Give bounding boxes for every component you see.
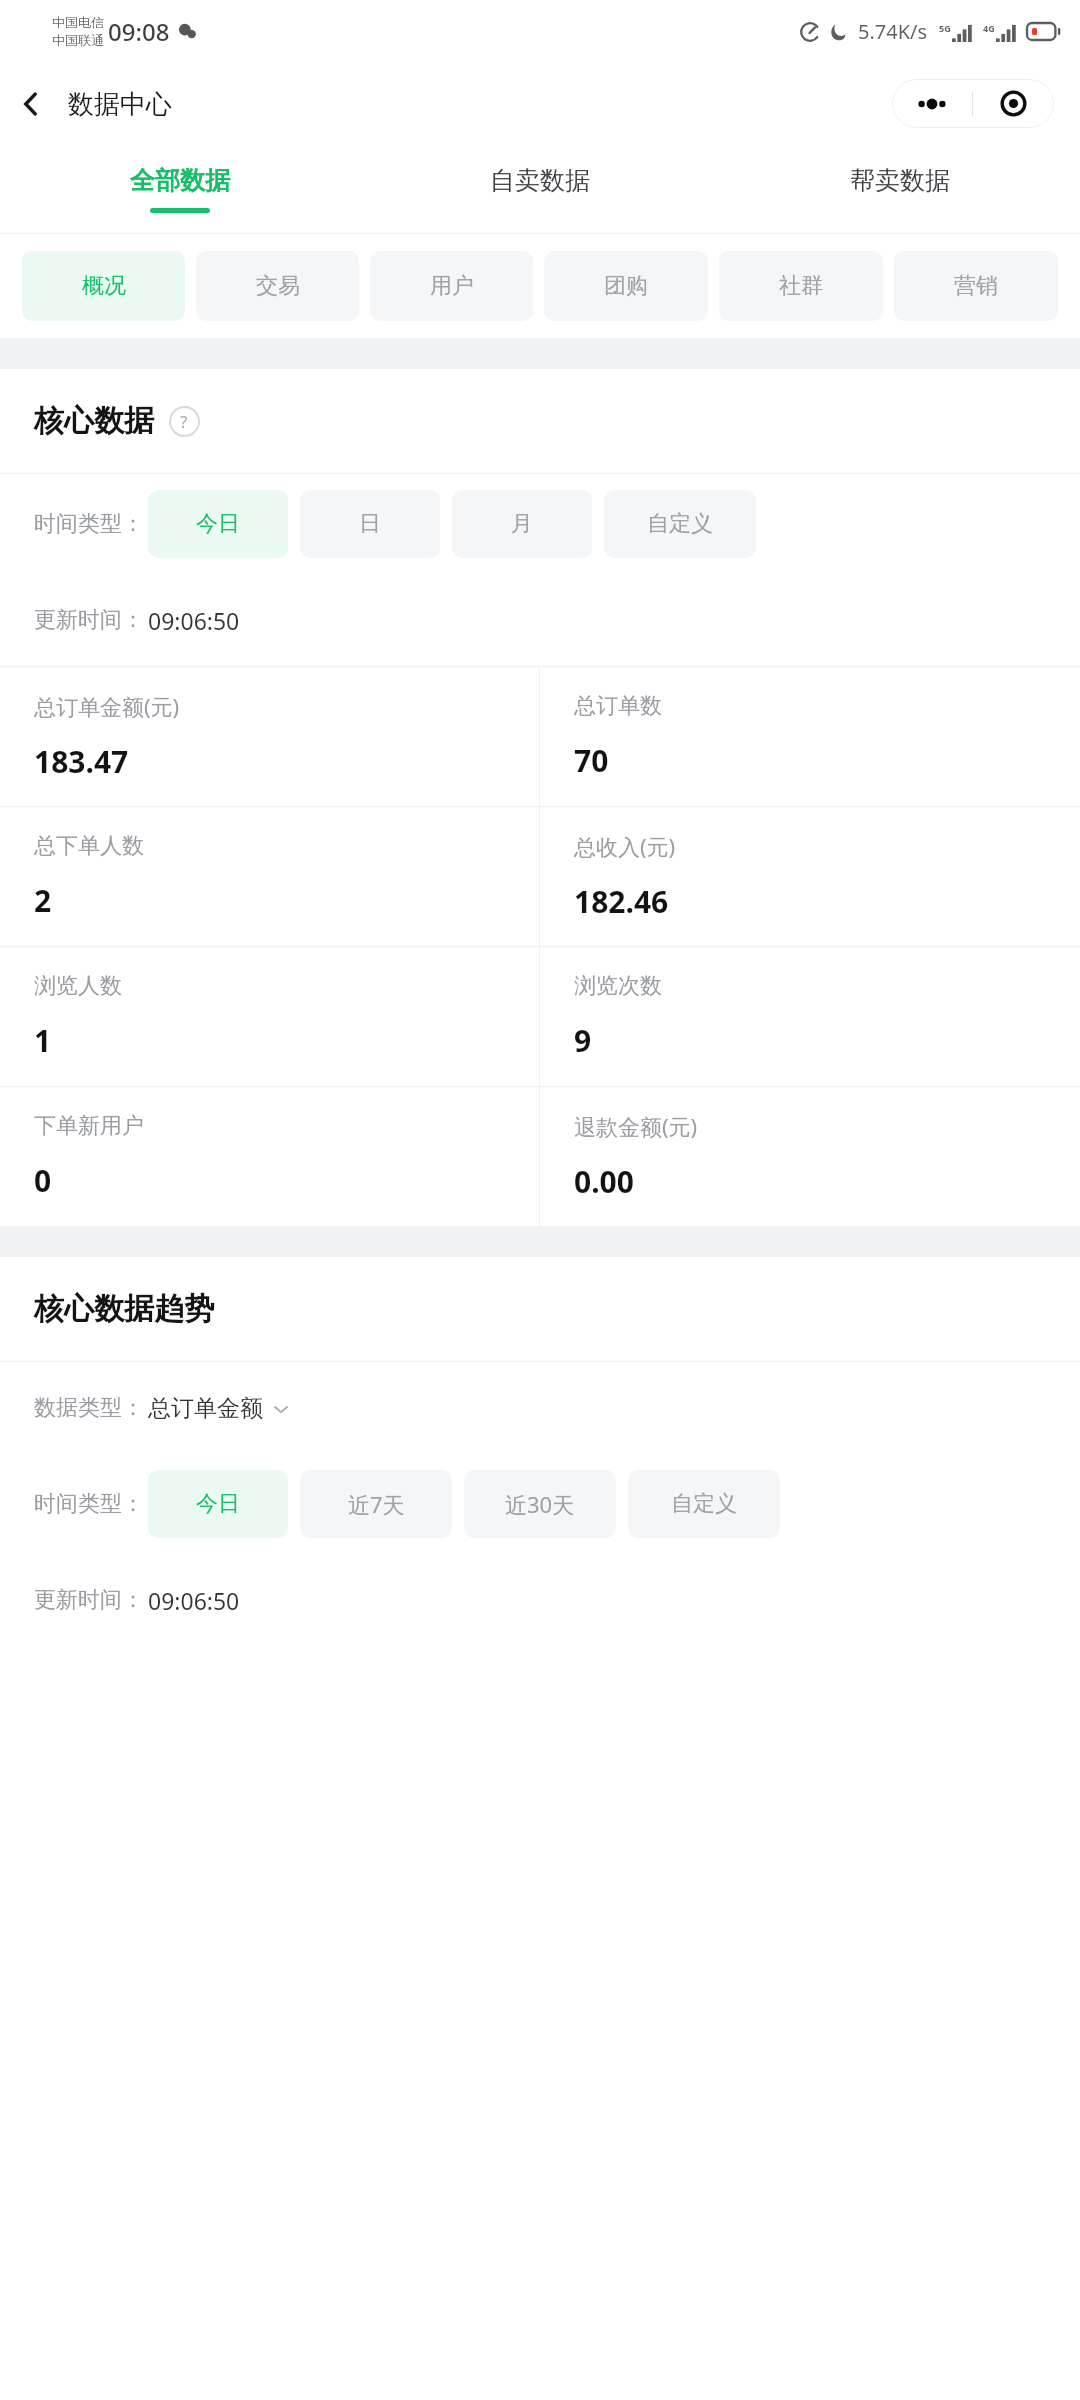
button[interactable]: 下单新用户 xyxy=(0,1087,539,1226)
staticText: 5.74K/s xyxy=(858,18,928,45)
button[interactable]: Back xyxy=(0,73,62,135)
staticText: 182.46 xyxy=(574,881,669,922)
button[interactable]: 自定义 xyxy=(628,1470,780,1538)
staticText: 总下单人数 xyxy=(34,832,144,860)
staticText: ? xyxy=(180,410,188,433)
button[interactable]: 浏览次数 xyxy=(540,947,1080,1086)
staticText: 4G xyxy=(983,22,995,34)
staticText: 自定义 xyxy=(647,510,713,538)
staticText: 概况 xyxy=(82,272,126,300)
staticText: 浏览次数 xyxy=(574,972,662,1000)
staticText: 总订单金额 xyxy=(148,1394,263,1423)
button[interactable]: 总订单金额 xyxy=(148,1394,291,1423)
staticText: 183.47 xyxy=(34,741,129,782)
staticText: 时间类型： xyxy=(34,510,144,538)
button[interactable]: 概况 xyxy=(22,251,185,321)
button[interactable]: 日 xyxy=(300,490,440,558)
button[interactable]: 团购 xyxy=(544,251,708,321)
staticText: 今日 xyxy=(196,510,240,538)
button[interactable]: Help xyxy=(167,404,201,438)
staticText: 更新时间： xyxy=(34,606,144,634)
staticText: 09:06:50 xyxy=(148,605,240,636)
staticText: 1 xyxy=(34,1020,52,1061)
staticText: 09:06:50 xyxy=(148,1585,240,1616)
staticText: 中国电信 xyxy=(52,14,104,30)
button[interactable]: 营销 xyxy=(894,251,1058,321)
button[interactable]: 总订单数 xyxy=(540,667,1080,806)
staticText: 总订单数 xyxy=(574,692,662,720)
staticText: 全部数据 xyxy=(130,165,230,196)
button[interactable]: 交易 xyxy=(196,251,359,321)
staticText: 70 xyxy=(574,740,609,781)
staticText: 自定义 xyxy=(671,1490,737,1518)
staticText: 用户 xyxy=(430,272,474,300)
staticText: 总订单金额(元) xyxy=(34,691,180,721)
staticText: 近30天 xyxy=(505,1489,575,1519)
button[interactable]: 自定义 xyxy=(604,490,756,558)
button[interactable]: 帮卖数据 xyxy=(720,145,1080,233)
button[interactable]: 总订单金额(元) xyxy=(0,667,539,806)
staticText: 退款金额(元) xyxy=(574,1111,698,1141)
button[interactable]: 月 xyxy=(452,490,592,558)
staticText: 今日 xyxy=(196,1490,240,1518)
button[interactable]: 近7天 xyxy=(300,1470,452,1538)
staticText: 数据中心 xyxy=(68,88,172,121)
staticText: 社群 xyxy=(779,272,823,300)
button[interactable]: More options xyxy=(892,79,972,128)
button[interactable]: 浏览人数 xyxy=(0,947,539,1086)
staticText: 更新时间： xyxy=(34,1586,144,1614)
button[interactable]: 近30天 xyxy=(464,1470,616,1538)
staticText: 5G xyxy=(939,22,951,34)
staticText: 核心数据趋势 xyxy=(34,1290,214,1328)
staticText: 日 xyxy=(359,510,381,538)
staticText: 总收入(元) xyxy=(574,831,676,861)
staticText: 0 xyxy=(34,1160,52,1201)
staticText: 近7天 xyxy=(348,1489,405,1519)
button[interactable]: 总下单人数 xyxy=(0,807,539,946)
staticText: 营销 xyxy=(954,272,998,300)
staticText: 2 xyxy=(34,880,52,921)
staticText: 09:08 xyxy=(108,15,170,48)
button[interactable]: 今日 xyxy=(148,1470,288,1538)
staticText: 月 xyxy=(511,510,533,538)
button[interactable]: 社群 xyxy=(719,251,883,321)
staticText: 0.00 xyxy=(574,1161,634,1202)
staticText: 帮卖数据 xyxy=(850,165,950,196)
button[interactable]: Close xyxy=(973,79,1054,128)
button[interactable]: 自卖数据 xyxy=(360,145,720,233)
staticText: 核心数据 xyxy=(34,402,154,440)
staticText: 中国联通 xyxy=(52,32,104,48)
staticText: 数据类型： xyxy=(34,1394,144,1422)
staticText: 自卖数据 xyxy=(490,165,590,196)
staticText: 下单新用户 xyxy=(34,1112,144,1140)
button[interactable]: 今日 xyxy=(148,490,288,558)
staticText: 团购 xyxy=(604,272,648,300)
staticText: 时间类型： xyxy=(34,1490,144,1518)
button[interactable]: 用户 xyxy=(370,251,533,321)
button[interactable]: 退款金额(元) xyxy=(540,1087,1080,1226)
staticText: 交易 xyxy=(256,272,300,300)
staticText: 浏览人数 xyxy=(34,972,122,1000)
button[interactable]: 全部数据 xyxy=(0,145,360,233)
staticText: 9 xyxy=(574,1020,592,1061)
button[interactable]: 总收入(元) xyxy=(540,807,1080,946)
